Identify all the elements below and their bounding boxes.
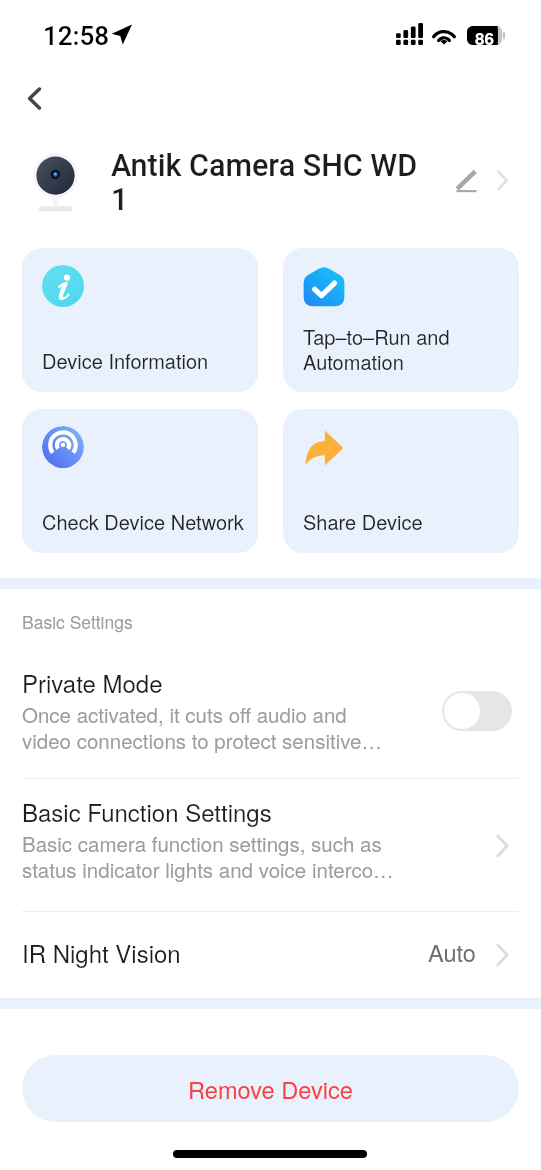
button[interactable]: IR Night Vision — [0, 928, 541, 978]
staticText: Antik Camera SHC WD 1 — [111, 148, 426, 217]
staticText: 86 — [475, 26, 494, 45]
staticText: Private Mode — [22, 665, 163, 699]
button[interactable]: Share Device — [283, 409, 519, 553]
staticText: Remove Device — [188, 1072, 353, 1106]
button[interactable]: Device Information — [22, 248, 258, 392]
staticText: Device Information — [42, 346, 209, 375]
staticText: Tap–to–Run and Automation — [303, 322, 450, 375]
button[interactable]: Rename device — [448, 162, 484, 198]
staticText: 12:58 — [43, 21, 110, 51]
staticText: Check Device Network — [42, 507, 244, 536]
button[interactable]: Tap–to–Run and Automation — [283, 248, 519, 392]
button[interactable]: Check Device Network — [22, 409, 258, 553]
button[interactable]: Remove Device — [22, 1055, 519, 1122]
staticText: Basic Settings — [22, 609, 133, 634]
staticText: Basic Function Settings — [22, 794, 272, 828]
button[interactable]: Private Mode — [0, 660, 541, 760]
button[interactable]: Back — [8, 72, 60, 124]
staticText: Once activated, it cuts off audio and vi… — [22, 699, 394, 755]
button[interactable]: Antik Camera SHC WD 1 — [0, 140, 541, 226]
staticText: Basic camera function settings, such as … — [22, 828, 394, 884]
button[interactable]: Basic Function Settings — [0, 789, 541, 889]
staticText: IR Night Vision — [22, 935, 181, 969]
staticText: Share Device — [303, 507, 423, 536]
button[interactable]: Private Mode toggle — [442, 691, 512, 731]
button[interactable]: Device details — [484, 162, 520, 198]
staticText: Auto — [428, 935, 476, 969]
